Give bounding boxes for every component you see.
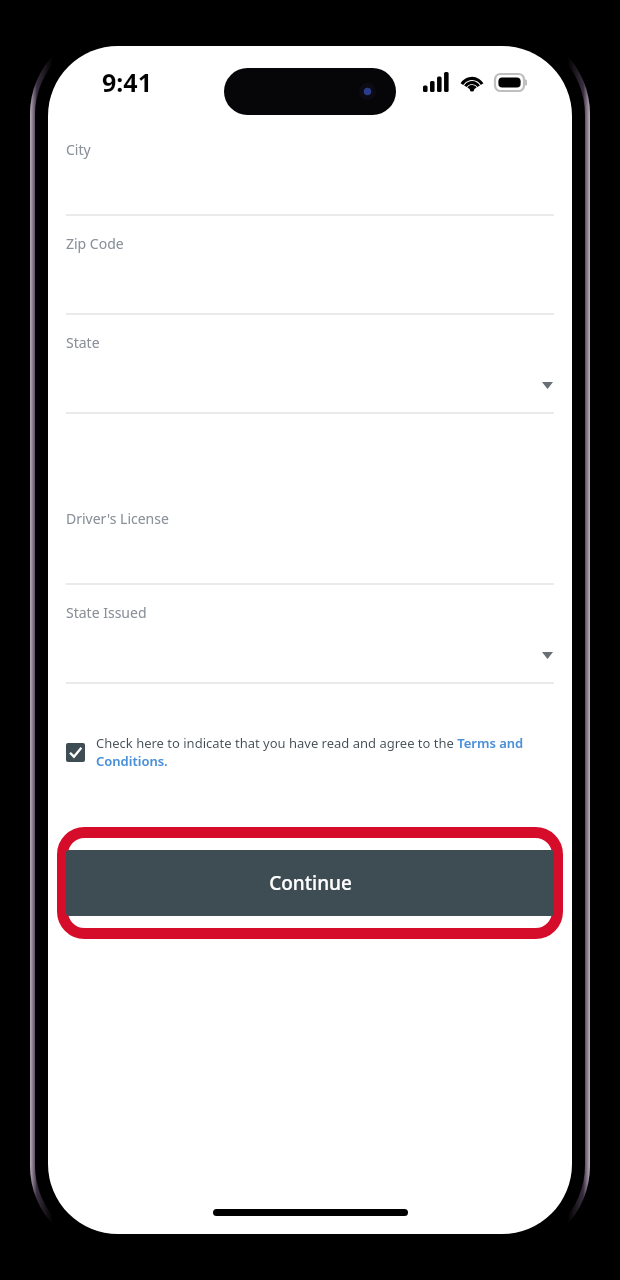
button[interactable]: Agree to terms checkbox <box>66 743 85 762</box>
staticText: Driver's License <box>66 509 169 528</box>
button[interactable]: State <box>48 315 572 412</box>
staticText: Continue <box>269 870 352 896</box>
button[interactable]: State Issued <box>48 585 572 682</box>
button[interactable]: City <box>48 122 572 214</box>
button[interactable]: Driver's License <box>48 491 572 583</box>
staticText: Zip Code <box>66 234 124 253</box>
staticText: Check here to indicate that you have rea… <box>96 734 554 770</box>
button[interactable]: Continue <box>66 850 554 916</box>
button[interactable]: Agree to terms checkbox <box>66 734 554 770</box>
staticText: State Issued <box>66 603 147 622</box>
button[interactable]: Zip Code <box>48 216 572 313</box>
staticText: 9:41 <box>102 65 152 99</box>
staticText: City <box>66 140 91 159</box>
staticText: State <box>66 333 100 352</box>
